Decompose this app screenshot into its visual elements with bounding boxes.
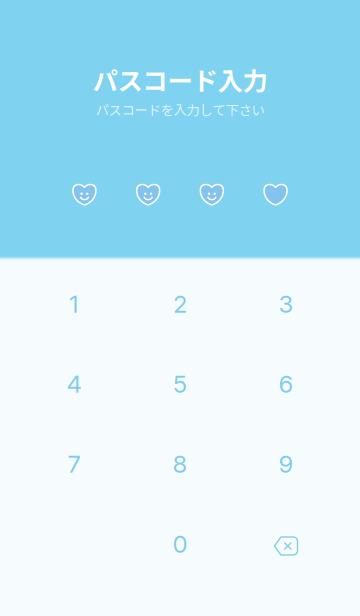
staticText: 8: [172, 449, 187, 478]
button[interactable]: 9: [233, 424, 339, 504]
staticText: 0: [172, 529, 187, 558]
button[interactable]: Delete: [233, 504, 339, 584]
staticText: 4: [66, 369, 81, 398]
staticText: パスコードを入力して下さい: [95, 100, 264, 119]
staticText: 9: [278, 449, 293, 478]
button[interactable]: 4: [21, 344, 127, 424]
staticText: 2: [173, 289, 187, 318]
staticText: パスコード入力: [92, 61, 267, 98]
staticText: 3: [278, 289, 293, 318]
button[interactable]: 2: [127, 264, 233, 344]
staticText: 7: [67, 449, 80, 478]
button[interactable]: 3: [233, 264, 339, 344]
button[interactable]: 0: [127, 504, 233, 584]
button[interactable]: 1: [21, 264, 127, 344]
staticText: 6: [278, 369, 293, 398]
button[interactable]: 6: [233, 344, 339, 424]
button[interactable]: 8: [127, 424, 233, 504]
button[interactable]: 7: [21, 424, 127, 504]
staticText: 1: [69, 289, 79, 318]
button[interactable]: 5: [127, 344, 233, 424]
staticText: 5: [173, 369, 187, 398]
